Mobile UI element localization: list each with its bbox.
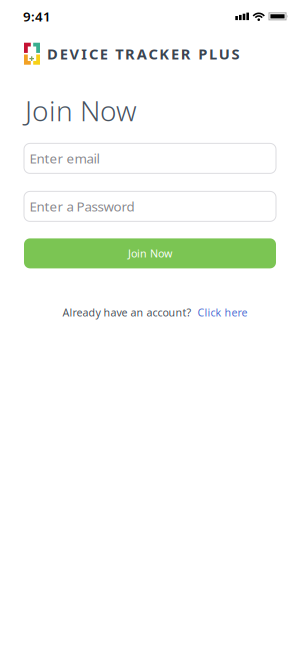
staticText: DEVICE TRACKER PLUS: [47, 44, 239, 63]
staticText: Join Now: [25, 92, 137, 129]
staticText: Enter email: [29, 149, 99, 167]
staticText: Already have an account?: [62, 305, 191, 320]
button[interactable]: Join Now: [24, 238, 276, 268]
staticText: Join Now: [128, 246, 172, 260]
staticText: 9:41: [23, 7, 51, 25]
staticText: Enter a Password: [29, 197, 134, 215]
staticText: Click here: [197, 305, 247, 320]
button[interactable]: Click here: [197, 305, 247, 320]
textField[interactable]: Enter a Password: [29, 197, 276, 215]
textField[interactable]: Enter email: [29, 149, 276, 167]
